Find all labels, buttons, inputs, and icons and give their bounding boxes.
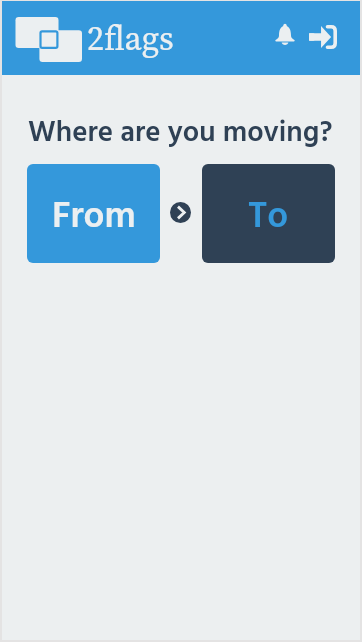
staticText: Where are you moving? xyxy=(28,110,333,156)
button[interactable]: Notifications xyxy=(265,15,305,55)
button[interactable]: To xyxy=(202,164,335,263)
button[interactable]: From xyxy=(27,164,160,263)
button[interactable]: Continue xyxy=(170,202,191,223)
staticText: From xyxy=(52,188,136,247)
staticText: To xyxy=(248,188,289,247)
button[interactable]: 2flags xyxy=(12,11,177,66)
button[interactable]: Sign out xyxy=(303,17,343,57)
staticText: 2flags xyxy=(87,15,174,62)
